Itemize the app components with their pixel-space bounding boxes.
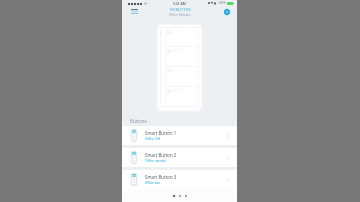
button[interactable]: Smart Button 1 (122, 126, 237, 145)
button[interactable]: Menu (128, 5, 141, 17)
staticText: Smart Button 3 (145, 174, 177, 180)
staticText: REMOTES (170, 6, 191, 12)
staticText: 9:41 AM (173, 1, 186, 6)
staticText: Smart Button 2 (145, 152, 177, 158)
button[interactable]: Settings (221, 6, 233, 18)
staticText: 100% (218, 1, 226, 5)
staticText: Smart Button 1 (145, 130, 177, 136)
button[interactable] (158, 25, 201, 110)
staticText: Office normal (145, 159, 166, 163)
staticText: Office 100 (145, 137, 161, 141)
staticText: Office Remote (169, 13, 191, 17)
button[interactable]: Smart Button 3 (122, 170, 237, 189)
staticText: Office low (145, 181, 160, 185)
button[interactable]: Smart Button 2 (122, 148, 237, 167)
staticText: Buttons (130, 118, 147, 124)
